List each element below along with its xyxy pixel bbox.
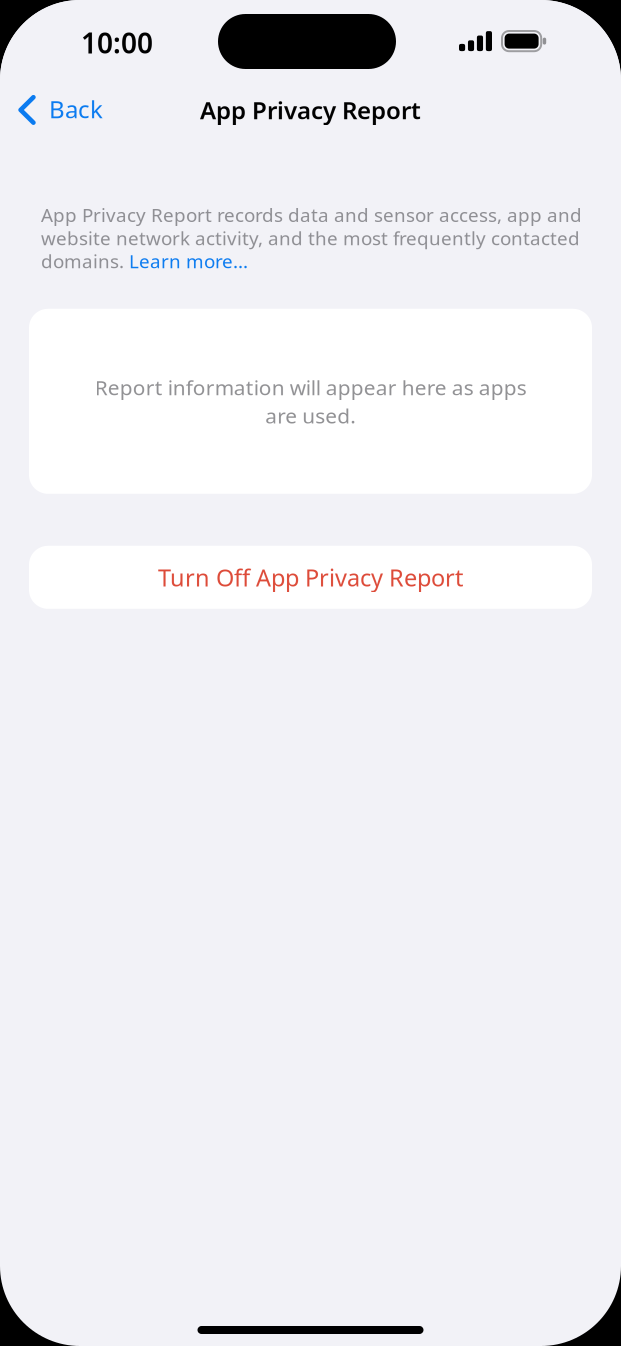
staticText: domains. [41, 248, 129, 274]
staticText: App Privacy Report records data and sens… [41, 202, 582, 228]
staticText: 10:00 [81, 24, 153, 61]
staticText: website network activity, and the most f… [41, 225, 580, 251]
button[interactable]: Turn Off App Privacy Report [29, 546, 592, 609]
staticText: Report information will appear here as a… [94, 373, 526, 430]
staticText: Back [49, 93, 103, 125]
staticText: Turn Off App Privacy Report [158, 561, 463, 593]
staticText: Learn more... [129, 248, 248, 274]
button[interactable]: Back [0, 85, 113, 135]
button[interactable]: Learn more... [129, 248, 248, 274]
staticText: App Privacy Report [200, 94, 421, 126]
